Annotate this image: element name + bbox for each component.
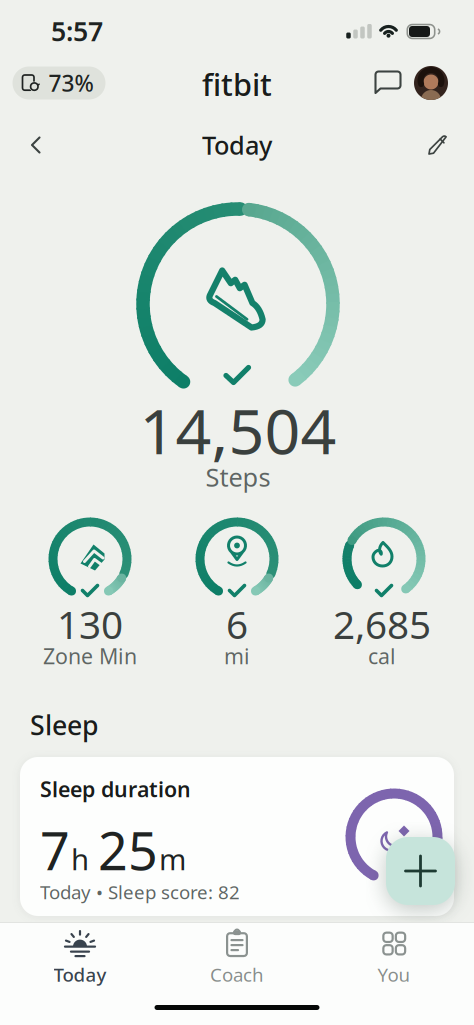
staticText: m	[159, 839, 186, 878]
staticText: Steps	[205, 460, 270, 494]
staticText: h	[71, 839, 97, 878]
staticText: Today	[53, 962, 106, 987]
staticText: 130	[57, 598, 123, 650]
button[interactable]: You	[339, 922, 449, 994]
staticText: 5:57	[51, 13, 103, 49]
staticText: 2,685	[333, 598, 431, 650]
staticText: 73%	[48, 68, 93, 98]
staticText: Zone Min	[43, 642, 137, 670]
button[interactable]: Profile	[414, 66, 448, 100]
staticText: mi	[224, 642, 250, 670]
button[interactable]: Back	[30, 136, 42, 153]
button[interactable]: Add	[386, 837, 455, 905]
staticText: Today	[202, 128, 272, 162]
button[interactable]: Coach	[182, 922, 292, 994]
button[interactable]: Sleep duration	[20, 757, 454, 916]
button[interactable]: Device battery 73%	[12, 66, 105, 99]
staticText: 7	[40, 815, 70, 885]
staticText: You	[377, 962, 410, 987]
staticText: Coach	[210, 962, 264, 987]
button[interactable]: Edit	[428, 135, 448, 155]
staticText: Sleep	[30, 707, 99, 743]
staticText: Sleep duration	[40, 775, 191, 803]
button[interactable]: Messages	[374, 70, 402, 96]
staticText: 6	[226, 598, 248, 650]
staticText: cal	[368, 642, 396, 670]
staticText: 25	[98, 815, 158, 885]
button[interactable]: Today	[25, 922, 135, 994]
staticText: 14,504	[139, 388, 336, 472]
staticText: Today • Sleep score: 82	[40, 880, 240, 904]
staticText: fitbit	[202, 64, 272, 104]
